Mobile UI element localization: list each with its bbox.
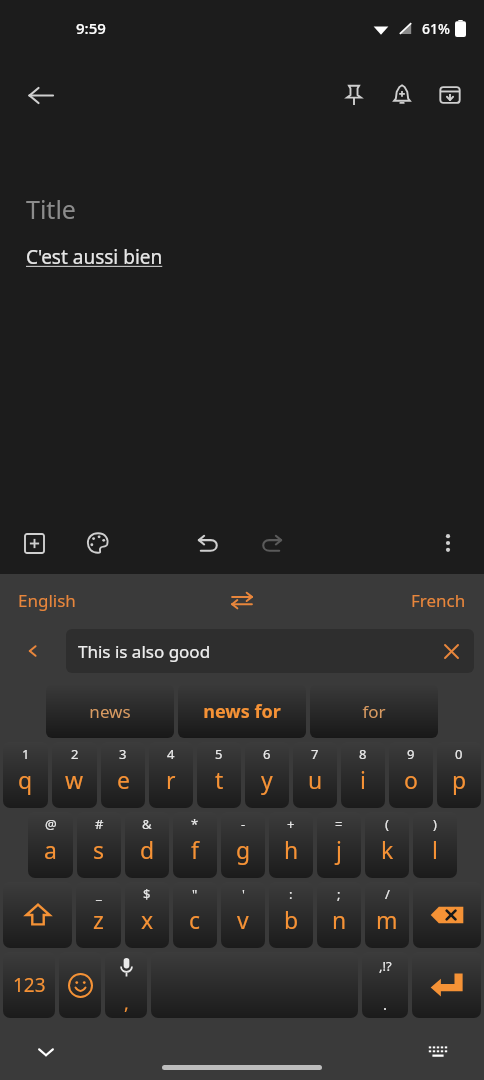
button[interactable]: Redo (248, 519, 296, 567)
staticText: 7 (311, 745, 319, 763)
staticText: $ (143, 885, 151, 903)
button[interactable]: news (46, 684, 174, 738)
button[interactable]: Backspace (413, 882, 481, 948)
button[interactable]: o (389, 742, 433, 808)
staticText: e (117, 764, 130, 795)
button[interactable]: v (221, 882, 265, 948)
button[interactable]: c (173, 882, 217, 948)
staticText: c (189, 904, 201, 935)
button[interactable]: g (221, 812, 265, 878)
button[interactable]: x (125, 882, 169, 948)
button[interactable]: r (149, 742, 193, 808)
button[interactable]: French (405, 583, 472, 618)
button[interactable]: p (437, 742, 481, 808)
button[interactable]: Hide keyboard (24, 1030, 68, 1074)
button[interactable]: More options (424, 519, 472, 567)
button[interactable]: t (197, 742, 241, 808)
staticText: j (336, 834, 342, 865)
button[interactable]: Voice input (105, 952, 147, 1018)
button[interactable]: Undo (184, 519, 232, 567)
button[interactable]: Add reminder (378, 71, 426, 119)
staticText: _ (96, 885, 102, 903)
button[interactable]: Numbers (3, 952, 55, 1018)
button[interactable]: news for (178, 684, 306, 738)
staticText: 123 (13, 972, 46, 998)
staticText: & (142, 815, 152, 833)
staticText: ) (433, 815, 437, 833)
staticText: ' (242, 885, 245, 903)
staticText: @ (45, 815, 57, 833)
staticText: * (191, 815, 199, 833)
button[interactable]: h (269, 812, 313, 878)
staticText: French (411, 589, 466, 612)
staticText: 6 (263, 745, 271, 763)
staticText: 2 (71, 745, 79, 763)
button[interactable]: Color palette (74, 519, 122, 567)
staticText: ( (385, 815, 389, 833)
staticText: 8 (359, 745, 367, 763)
button[interactable]: Punctuation (362, 952, 408, 1018)
staticText: 0 (455, 745, 463, 763)
staticText: m (376, 904, 398, 935)
button[interactable]: n (317, 882, 361, 948)
button[interactable]: m (365, 882, 409, 948)
button[interactable]: Space (151, 952, 358, 1018)
button[interactable]: Archive (426, 71, 474, 119)
button[interactable]: Swap languages (219, 577, 265, 623)
button[interactable]: d (125, 812, 169, 878)
staticText: k (381, 834, 394, 865)
staticText: news (89, 700, 131, 723)
button[interactable]: Shift (3, 882, 72, 948)
staticText: b (284, 904, 299, 935)
staticText: v (237, 904, 249, 935)
staticText: o (404, 764, 418, 795)
button[interactable]: k (365, 812, 409, 878)
staticText: Title (26, 192, 76, 226)
staticText: q (18, 764, 33, 795)
staticText: 4 (167, 745, 175, 763)
button[interactable]: e (101, 742, 145, 808)
staticText: 3 (119, 745, 127, 763)
staticText: , (124, 991, 129, 1016)
staticText: = (335, 815, 343, 833)
button[interactable]: Clear (434, 634, 468, 668)
staticText: 9:59 (76, 18, 106, 38)
staticText: r (166, 764, 176, 795)
staticText: x (141, 904, 154, 935)
staticText: : (289, 885, 293, 903)
button[interactable]: Pin (330, 71, 378, 119)
staticText: t (215, 764, 224, 795)
button[interactable]: Previous (0, 626, 66, 676)
staticText: - (241, 815, 246, 833)
button[interactable]: q (3, 742, 48, 808)
button[interactable]: z (76, 882, 121, 948)
button[interactable]: Enter (412, 952, 481, 1018)
button[interactable]: Add (10, 519, 58, 567)
button[interactable]: Back (16, 71, 64, 119)
button[interactable]: b (269, 882, 313, 948)
button[interactable]: f (173, 812, 217, 878)
button[interactable]: l (413, 812, 457, 878)
button[interactable]: This is also good (66, 629, 474, 673)
button[interactable]: y (245, 742, 289, 808)
staticText: C'est aussi bien (26, 244, 168, 270)
staticText: l (432, 834, 438, 865)
staticText: / (385, 885, 390, 903)
staticText: English (18, 589, 76, 612)
button[interactable]: Emoji (59, 952, 101, 1018)
button[interactable]: English (12, 583, 82, 618)
staticText: f (191, 834, 199, 865)
staticText: a (44, 834, 57, 865)
button[interactable]: i (341, 742, 385, 808)
button[interactable]: w (52, 742, 97, 808)
staticText: y (261, 764, 273, 795)
button[interactable]: for (310, 684, 438, 738)
button[interactable]: j (317, 812, 361, 878)
button[interactable]: s (77, 812, 121, 878)
staticText: z (93, 904, 104, 935)
button[interactable]: a (28, 812, 73, 878)
button[interactable]: u (293, 742, 337, 808)
staticText: 61% (422, 19, 450, 38)
button[interactable]: Switch keyboard (416, 1030, 460, 1074)
staticText: 9 (407, 745, 415, 763)
